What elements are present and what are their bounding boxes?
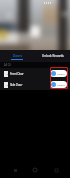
- staticText: Side Door: [10, 83, 23, 87]
- button[interactable]: Home: [29, 164, 41, 176]
- staticText: Unlock: [57, 72, 65, 75]
- staticText: Front Door: [10, 72, 24, 76]
- button[interactable]: Back: [9, 164, 21, 176]
- staticText: Unlock: [57, 83, 65, 86]
- button[interactable]: Unlock Records: [35, 50, 70, 62]
- staticText: Doors: [13, 54, 23, 58]
- staticText: All (2): [4, 63, 11, 67]
- button[interactable]: Front Door: [0, 68, 70, 79]
- button[interactable]: Recents: [50, 164, 62, 176]
- staticText: Unlock Records: [42, 54, 64, 58]
- button[interactable]: Doors: [0, 50, 35, 62]
- button[interactable]: Side Door: [0, 79, 70, 90]
- button[interactable]: Unlock: [50, 81, 67, 88]
- button[interactable]: Unlock: [50, 70, 67, 77]
